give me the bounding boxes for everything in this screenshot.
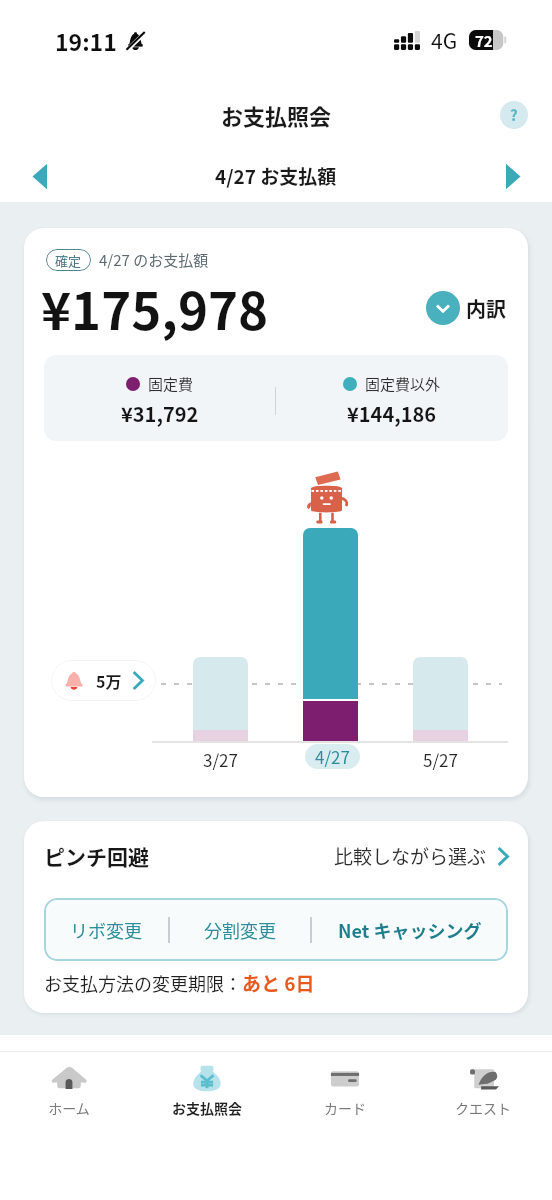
staticText: 固定費以外: [365, 373, 441, 395]
button[interactable]: 次の月: [494, 157, 532, 195]
button[interactable]: 前の月: [21, 157, 59, 195]
button[interactable]: リボ変更: [44, 898, 168, 961]
button[interactable]: 5万: [64, 660, 143, 701]
staticText: 5/27: [423, 747, 458, 772]
staticText: お支払照会: [172, 1098, 242, 1118]
staticText: 固定費: [148, 373, 194, 395]
staticText: Net キャッシング: [338, 917, 482, 943]
staticText: 比較しながら選ぶ: [334, 842, 487, 870]
staticText: リボ変更: [70, 917, 142, 943]
staticText: 19:11: [55, 24, 117, 57]
staticText: 4/27 のお支払額: [99, 249, 209, 271]
staticText: 確定: [55, 251, 82, 270]
staticText: クエスト: [455, 1098, 511, 1118]
staticText: 4/27 お支払額: [215, 162, 337, 190]
button[interactable]: カード: [276, 1052, 414, 1200]
button[interactable]: 比較しながら選ぶ: [334, 842, 508, 870]
staticText: 3/27: [203, 747, 238, 772]
staticText: あと 6日: [242, 969, 315, 997]
staticText: 4/27: [315, 744, 350, 769]
button[interactable]: ヘルプ: [500, 101, 528, 129]
button[interactable]: 分割変更: [170, 898, 310, 961]
staticText: ホーム: [48, 1098, 90, 1118]
staticText: 内訳: [466, 294, 506, 323]
staticText: ¥144,186: [347, 399, 437, 428]
staticText: お支払方法の変更期限：: [44, 970, 242, 996]
staticText: ピンチ回避: [44, 841, 149, 871]
button[interactable]: お支払照会: [138, 1052, 276, 1200]
staticText: 4G: [431, 25, 458, 55]
staticText: 5万: [96, 669, 122, 692]
button[interactable]: Net キャッシング: [312, 898, 508, 961]
staticText: 分割変更: [204, 917, 276, 943]
staticText: カード: [324, 1098, 366, 1118]
staticText: ¥175,978: [41, 271, 269, 345]
button[interactable]: 内訳: [426, 291, 506, 325]
button[interactable]: ホーム: [0, 1052, 138, 1200]
staticText: 72: [475, 30, 493, 50]
staticText: ¥31,792: [121, 399, 199, 428]
staticText: お支払照会: [221, 99, 332, 131]
button[interactable]: クエスト: [414, 1052, 552, 1200]
staticText: ?: [510, 104, 518, 126]
